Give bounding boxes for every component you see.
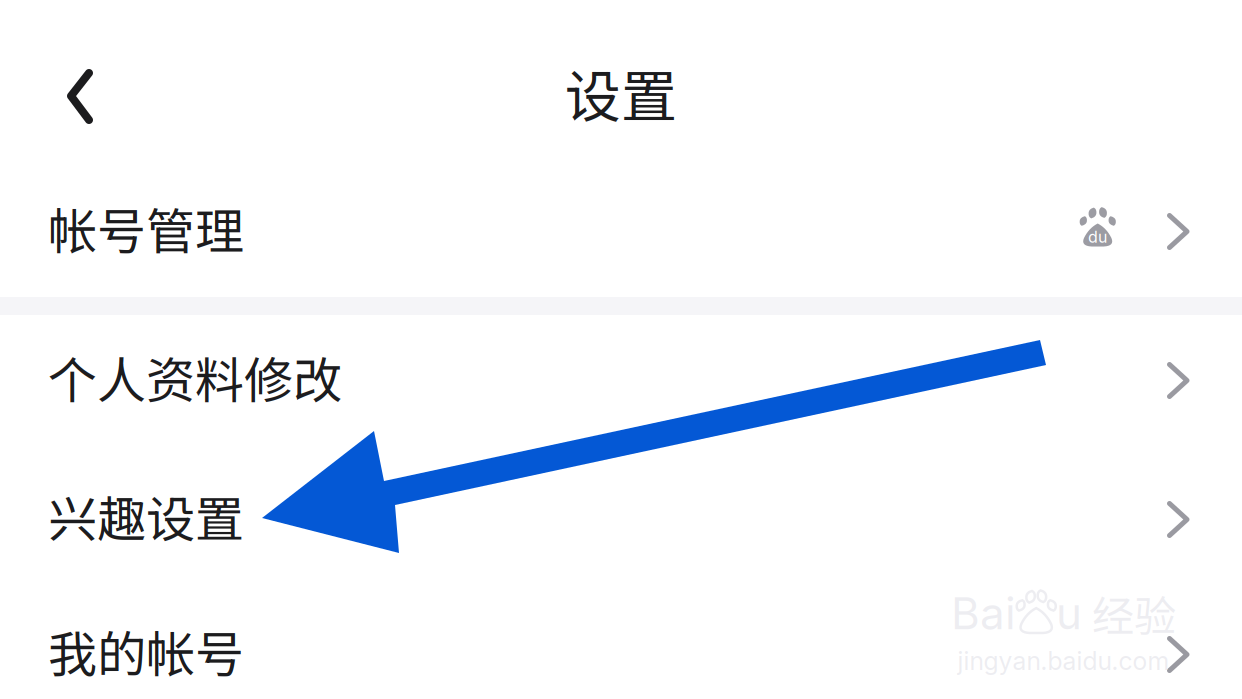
staticText: 经验 (1092, 583, 1176, 644)
staticText: 个人资料修改 (48, 341, 342, 412)
staticText: jingyan.baidu.com (957, 646, 1169, 676)
button[interactable]: Back (0, 0, 124, 163)
staticText: 设置 (565, 52, 677, 133)
button[interactable]: 个人资料修改 (0, 315, 1242, 443)
staticText: 帐号管理 (48, 192, 244, 263)
staticText: u (1056, 587, 1082, 640)
button[interactable]: 帐号管理 (0, 163, 1242, 297)
button[interactable]: 兴趣设置 (0, 443, 1242, 593)
staticText: 我的帐号 (48, 615, 244, 686)
staticText: 兴趣设置 (48, 480, 244, 551)
staticText: Bai (951, 587, 1016, 640)
staticText: du (1088, 227, 1107, 246)
button[interactable]: 我的帐号 (0, 593, 1242, 699)
